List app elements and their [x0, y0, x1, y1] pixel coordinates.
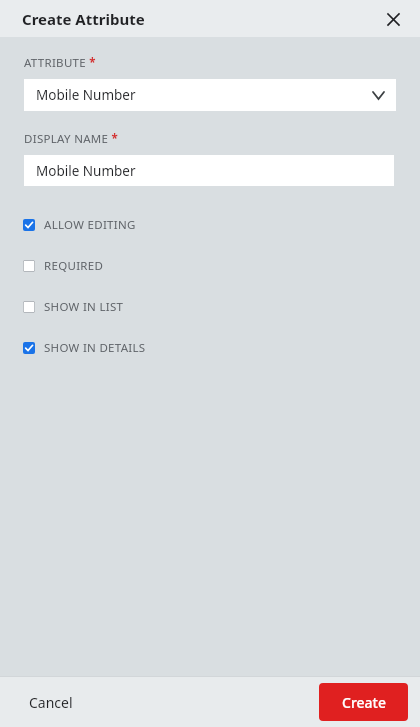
button[interactable]: Mobile Number	[24, 79, 396, 111]
button[interactable]: SHOW IN LIST	[0, 286, 420, 327]
staticText: Cancel	[29, 693, 73, 712]
staticText: ALLOW EDITING	[44, 217, 136, 233]
staticText: Mobile Number	[36, 162, 136, 180]
button[interactable]: Cancel	[18, 686, 84, 719]
button[interactable]: Close	[379, 5, 407, 33]
button[interactable]: Create	[319, 683, 408, 721]
staticText: SHOW IN LIST	[44, 299, 124, 315]
button[interactable]: SHOW IN DETAILS	[0, 327, 420, 368]
button[interactable]: ALLOW EDITING	[0, 204, 420, 245]
button[interactable]: Mobile Number	[24, 155, 394, 186]
staticText: Mobile Number	[36, 86, 136, 104]
staticText: REQUIRED	[44, 258, 104, 274]
button[interactable]: REQUIRED	[0, 245, 420, 286]
staticText: DISPLAY NAME *	[24, 131, 119, 147]
staticText: Create Attribute	[22, 9, 145, 29]
staticText: ATTRIBUTE *	[24, 55, 96, 71]
staticText: SHOW IN DETAILS	[44, 340, 146, 356]
staticText: Create	[342, 693, 386, 712]
